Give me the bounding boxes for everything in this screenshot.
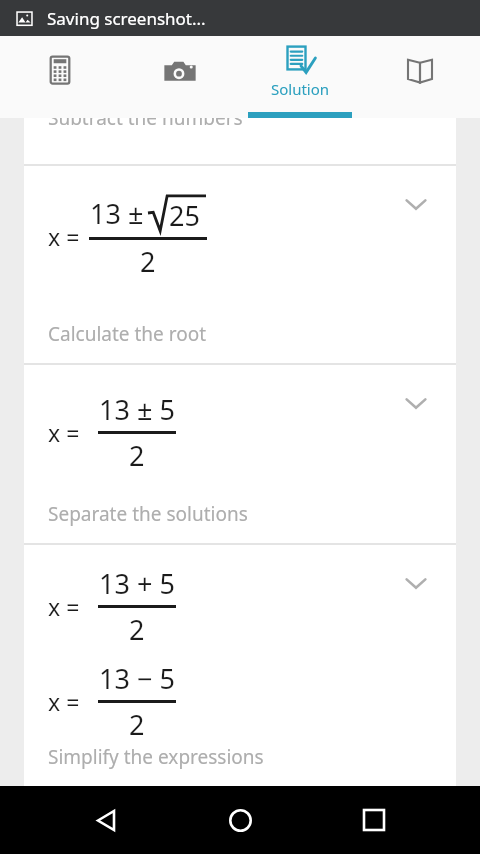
button[interactable]: Glossary <box>360 36 480 118</box>
staticText: Subtract the numbers <box>48 118 243 131</box>
button[interactable]: Back <box>78 792 134 848</box>
staticText: Saving screenshot... <box>47 7 206 30</box>
staticText: 13 + 5 <box>99 565 175 602</box>
staticText: 13 ± 5 <box>99 391 175 428</box>
staticText: Calculate the root <box>48 321 207 347</box>
button[interactable]: Expand step <box>398 385 434 421</box>
staticText: x = <box>48 417 80 448</box>
staticText: Solution <box>271 79 330 99</box>
button[interactable]: Camera <box>120 36 240 118</box>
staticText: Simplify the expressions <box>48 744 264 770</box>
staticText: x = <box>48 686 80 717</box>
staticText: 13 ± <box>90 195 144 232</box>
button[interactable]: Recents <box>346 792 402 848</box>
button[interactable]: Expand step <box>398 186 434 222</box>
button[interactable]: Subtract the numbers <box>24 118 456 164</box>
button[interactable]: x = <box>24 545 456 786</box>
staticText: 2 <box>129 706 145 743</box>
button[interactable]: x = <box>24 166 456 363</box>
staticText: x = <box>48 591 80 622</box>
button[interactable]: x = <box>24 365 456 543</box>
staticText: x = <box>48 221 80 252</box>
staticText: 25 <box>169 197 200 234</box>
button[interactable]: Expand step <box>398 565 434 601</box>
staticText: 13 − 5 <box>99 660 175 697</box>
button[interactable]: Calculator <box>0 36 120 118</box>
staticText: Separate the solutions <box>48 501 248 527</box>
button[interactable]: Solution <box>240 36 360 118</box>
staticText: 2 <box>140 243 156 280</box>
staticText: 2 <box>129 611 145 648</box>
staticText: 2 <box>129 437 145 474</box>
button[interactable]: Home <box>212 792 268 848</box>
